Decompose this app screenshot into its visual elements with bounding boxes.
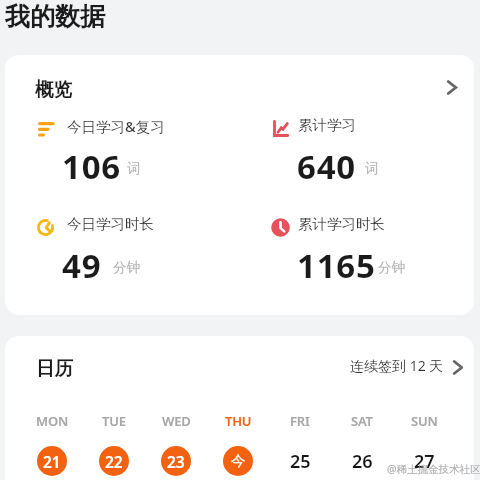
staticText: 27 bbox=[414, 449, 435, 474]
staticText: 累计学习时长 bbox=[298, 215, 385, 233]
button[interactable]: 23 bbox=[161, 446, 191, 476]
staticText: 25 bbox=[290, 449, 311, 474]
staticText: MON bbox=[36, 412, 69, 430]
button[interactable]: 22 bbox=[99, 446, 129, 476]
staticText: 分钟 bbox=[113, 259, 140, 276]
button[interactable]: 概览 bbox=[5, 55, 474, 315]
staticText: FRI bbox=[290, 412, 310, 430]
staticText: 词 bbox=[127, 160, 141, 177]
staticText: 今日学习&复习 bbox=[67, 116, 165, 136]
staticText: 49 bbox=[62, 243, 102, 288]
staticText: 词 bbox=[365, 160, 379, 177]
staticText: SUN bbox=[411, 412, 438, 430]
staticText: 概览 bbox=[35, 78, 72, 101]
staticText: 累计学习 bbox=[298, 116, 356, 134]
staticText: 今 bbox=[231, 452, 246, 470]
staticText: TUE bbox=[102, 412, 126, 430]
staticText: WED bbox=[162, 412, 191, 430]
staticText: 26 bbox=[352, 449, 373, 474]
staticText: 21 bbox=[43, 451, 61, 472]
staticText: 连续签到 12 天 bbox=[350, 356, 444, 375]
staticText: 今日学习时长 bbox=[67, 215, 154, 233]
button[interactable]: 连续签到 12 天 bbox=[345, 351, 467, 381]
staticText: 640 bbox=[297, 144, 357, 189]
staticText: 分钟 bbox=[378, 259, 405, 276]
staticText: 我的数据 bbox=[5, 1, 105, 32]
staticText: 1165 bbox=[297, 243, 376, 288]
staticText: THU bbox=[225, 412, 252, 430]
staticText: SAT bbox=[351, 412, 373, 430]
staticText: 22 bbox=[105, 451, 123, 472]
staticText: 106 bbox=[62, 144, 122, 189]
staticText: 23 bbox=[167, 451, 185, 472]
staticText: @稀土掘金技术社区 bbox=[387, 462, 480, 476]
button[interactable]: 21 bbox=[37, 446, 67, 476]
staticText: 日历 bbox=[36, 357, 73, 380]
button[interactable]: 今 bbox=[223, 446, 253, 476]
